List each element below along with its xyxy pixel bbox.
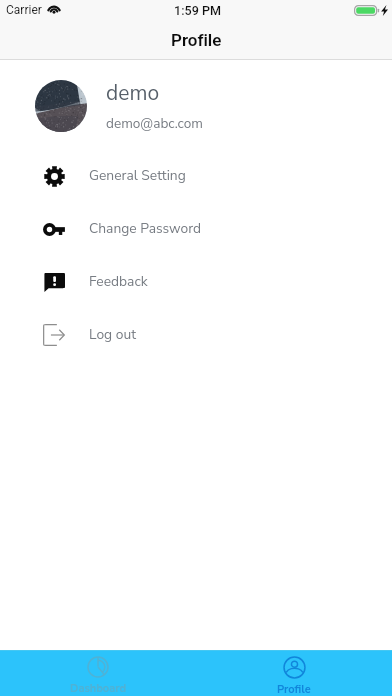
staticText: Profile — [171, 30, 222, 50]
staticText: demo — [106, 79, 160, 108]
staticText: Feedback — [89, 272, 148, 291]
button[interactable]: demo — [0, 79, 392, 133]
button[interactable]: General Setting — [0, 149, 392, 202]
staticText: 1:59 PM — [174, 3, 221, 18]
staticText: demo@abc.com — [106, 114, 203, 133]
staticText: Dashboard — [70, 681, 126, 696]
button[interactable]: Log out — [0, 308, 392, 361]
staticText: Profile — [277, 682, 311, 696]
button[interactable]: Profile — [196, 650, 392, 696]
button[interactable]: Feedback — [0, 255, 392, 308]
button[interactable]: Dashboard — [0, 650, 196, 696]
staticText: General Setting — [89, 166, 186, 185]
staticText: Change Password — [89, 219, 202, 238]
staticText: Log out — [89, 325, 136, 344]
button[interactable]: Change Password — [0, 202, 392, 255]
staticText: Carrier — [6, 3, 42, 17]
